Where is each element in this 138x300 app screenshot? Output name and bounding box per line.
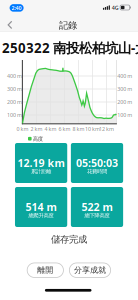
staticText: 100 m bbox=[117, 111, 132, 119]
staticText: 2 km bbox=[31, 125, 43, 133]
staticText: 花費時間 bbox=[87, 168, 107, 175]
staticText: 分享成就 bbox=[74, 265, 106, 275]
staticText: 離開 bbox=[37, 265, 53, 275]
staticText: 高度 bbox=[33, 136, 43, 142]
staticText: 儲存完成 bbox=[51, 234, 87, 245]
staticText: 250322 南投松柏坑山-大橫屏山 bbox=[2, 39, 138, 57]
staticText: 0 km bbox=[17, 125, 29, 133]
staticText: 05:50:03 bbox=[76, 156, 118, 170]
button[interactable]: 返回 bbox=[4, 18, 16, 32]
button[interactable]: 離開 bbox=[27, 263, 63, 277]
staticText: 300 m bbox=[7, 85, 22, 93]
staticText: 514 m bbox=[26, 200, 57, 214]
staticText: 8 km bbox=[73, 125, 85, 133]
staticText: 300 m bbox=[117, 85, 132, 93]
staticText: 12 km bbox=[99, 125, 114, 133]
staticText: 200 m bbox=[117, 98, 132, 106]
staticText: 400 m bbox=[7, 72, 22, 80]
staticText: 總下降高度 bbox=[84, 212, 109, 219]
staticText: 10 km bbox=[85, 125, 100, 133]
staticText: 200 m bbox=[7, 98, 22, 106]
staticText: 2:40 bbox=[12, 4, 22, 11]
staticText: 4G bbox=[112, 4, 119, 11]
staticText: 累計距離 bbox=[31, 168, 51, 175]
button[interactable]: 分享成就 bbox=[69, 263, 111, 277]
staticText: 6 km bbox=[59, 125, 71, 133]
staticText: 記錄 bbox=[59, 20, 77, 31]
button[interactable]: 儲存完成 bbox=[51, 234, 87, 245]
staticText: 12.19 km bbox=[18, 156, 65, 170]
staticText: 100 m bbox=[7, 111, 22, 119]
staticText: 總爬升高度 bbox=[29, 212, 54, 219]
staticText: 400 m bbox=[117, 72, 132, 80]
staticText: 4 km bbox=[45, 125, 57, 133]
staticText: 522 m bbox=[81, 200, 112, 214]
